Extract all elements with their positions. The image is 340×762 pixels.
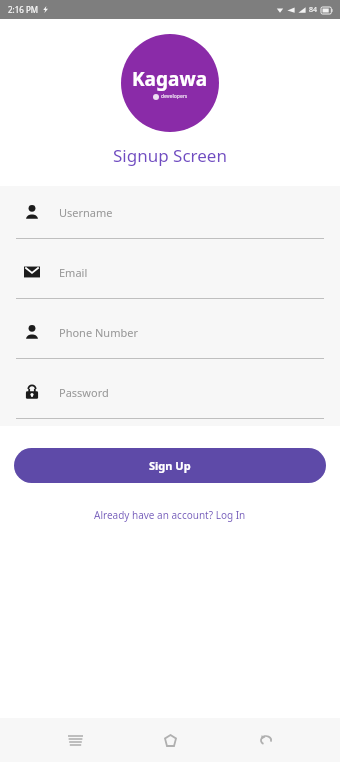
button[interactable]: Username [0, 186, 340, 246]
staticText: Email [59, 265, 88, 280]
button[interactable]: Recent apps [54, 719, 96, 761]
button[interactable]: Email [0, 246, 340, 306]
staticText: developers [161, 93, 188, 100]
button[interactable]: Sign Up [14, 448, 326, 483]
button[interactable]: Already have an account? Log In [86, 505, 254, 525]
staticText: Password [59, 385, 109, 400]
staticText: Phone Number [59, 325, 138, 340]
staticText: Already have an account? Log In [94, 508, 246, 522]
staticText: Username [59, 205, 113, 220]
button[interactable]: Back [245, 719, 287, 761]
button[interactable]: Password [0, 366, 340, 426]
staticText: 84 [309, 5, 318, 15]
button[interactable]: Home [149, 719, 191, 761]
staticText: Kagawa [132, 66, 208, 92]
staticText: 2:16 PM [8, 4, 39, 15]
button[interactable]: Phone Number [0, 306, 340, 366]
staticText: Sign Up [149, 458, 191, 473]
staticText: Signup Screen [0, 144, 340, 167]
